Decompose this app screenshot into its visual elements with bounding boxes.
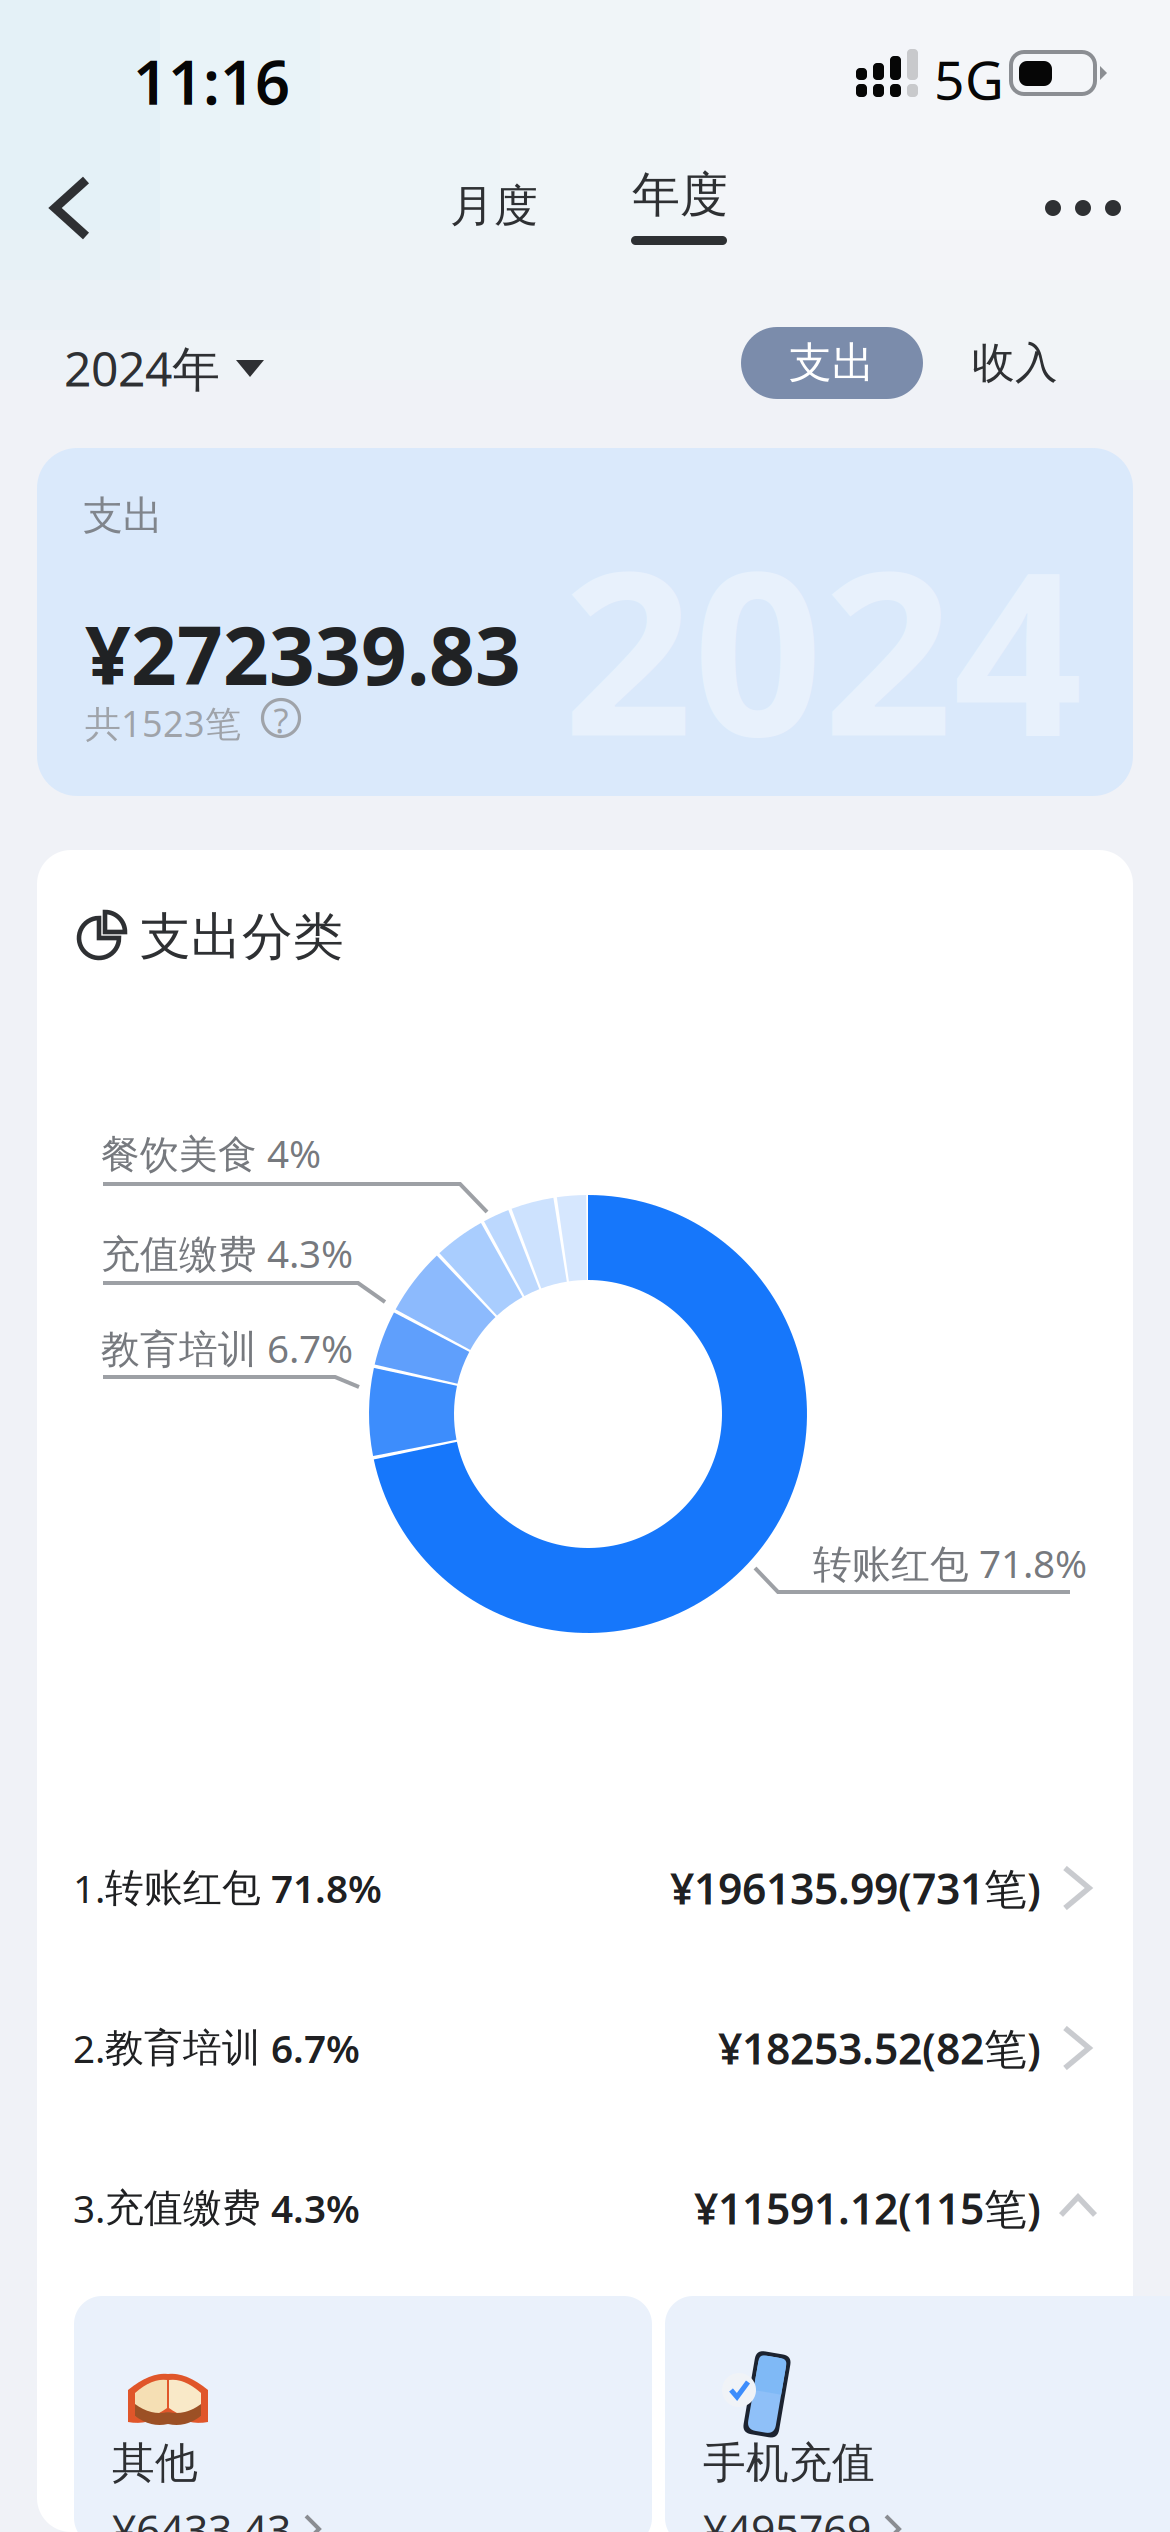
- staticText: 共1523笔: [85, 699, 241, 747]
- button[interactable]: 说明: [260, 697, 302, 739]
- staticText: 4.3%: [261, 2182, 360, 2234]
- staticText: ?: [273, 697, 288, 743]
- button[interactable]: 月度: [432, 168, 556, 244]
- staticText: 71.8%: [261, 1862, 382, 1914]
- button[interactable]: 支出: [741, 327, 923, 399]
- staticText: 5G: [934, 44, 1004, 114]
- staticText: 11:16: [133, 40, 290, 122]
- staticText: 支出: [789, 337, 875, 389]
- staticText: 支出分类: [140, 906, 344, 968]
- staticText: 教育培训 6.7%: [101, 1322, 353, 1374]
- staticText: ¥11591.12(115笔): [694, 2180, 1041, 2236]
- button[interactable]: 更多: [1031, 158, 1135, 258]
- staticText: ¥196135.99(731笔): [670, 1860, 1041, 1916]
- button[interactable]: 收入: [955, 327, 1075, 399]
- staticText: 充值缴费 4.3%: [101, 1227, 353, 1279]
- staticText: 1.: [73, 1862, 105, 1914]
- button[interactable]: 手机充值: [665, 2296, 1170, 2532]
- staticText: 餐饮美食 4%: [101, 1127, 321, 1179]
- button[interactable]: 其他: [74, 2296, 652, 2532]
- staticText: 3.: [73, 2182, 105, 2234]
- staticText: 2024: [563, 497, 1083, 798]
- staticText: 其他: [112, 2437, 198, 2489]
- button[interactable]: 年度: [614, 162, 746, 266]
- staticText: ¥18253.52(82笔): [718, 2020, 1041, 2076]
- button[interactable]: 返回: [16, 156, 124, 260]
- staticText: 转账红包 71.8%: [813, 1537, 1087, 1589]
- staticText: 教育培训: [105, 2024, 261, 2072]
- staticText: ¥495769: [703, 2501, 871, 2532]
- staticText: 月度: [450, 179, 538, 233]
- button[interactable]: 3.: [37, 2155, 1133, 2265]
- staticText: 转账红包: [105, 1864, 261, 1912]
- staticText: 充值缴费: [105, 2184, 261, 2232]
- button[interactable]: 2.: [37, 1995, 1133, 2105]
- staticText: 手机充值: [703, 2437, 875, 2489]
- button[interactable]: 1.: [37, 1835, 1133, 1945]
- staticText: 支出: [83, 491, 163, 540]
- staticText: ¥6433.43: [112, 2501, 291, 2532]
- staticText: 收入: [972, 337, 1058, 389]
- staticText: ¥272339.83: [85, 601, 521, 707]
- button[interactable]: 2024年: [64, 330, 364, 406]
- staticText: 年度: [632, 165, 728, 224]
- staticText: 2.: [73, 2022, 105, 2074]
- staticText: 2024年: [64, 336, 220, 400]
- staticText: 6.7%: [261, 2022, 360, 2074]
